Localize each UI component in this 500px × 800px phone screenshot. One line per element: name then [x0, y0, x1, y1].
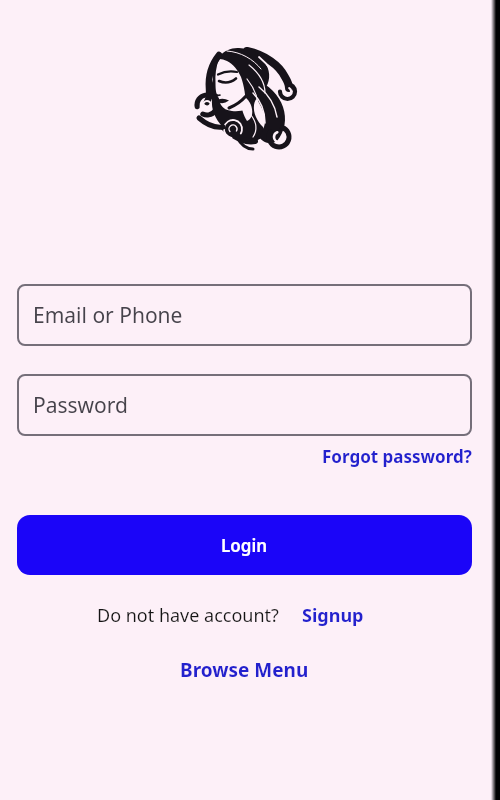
button[interactable]: Email or Phone	[17, 284, 472, 346]
button[interactable]: Signup	[302, 603, 364, 628]
button[interactable]: Login	[17, 515, 472, 575]
staticText: Password	[33, 391, 128, 420]
staticText: Do not have account?	[97, 603, 279, 628]
staticText: Browse Menu	[180, 657, 309, 683]
button[interactable]: Browse Menu	[180, 657, 309, 683]
button[interactable]: Forgot password?	[322, 445, 472, 467]
staticText: Signup	[302, 603, 364, 628]
staticText: Login	[221, 534, 268, 557]
staticText: Forgot password?	[322, 445, 472, 467]
button[interactable]: Password	[17, 374, 472, 436]
staticText: Email or Phone	[33, 301, 183, 330]
